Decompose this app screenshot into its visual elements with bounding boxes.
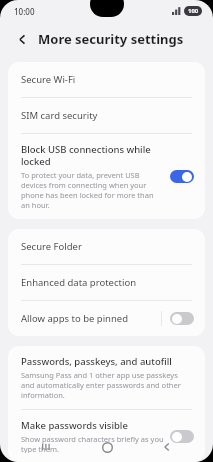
staticText: Secure Wi-Fi <box>21 73 76 86</box>
button[interactable]: Secure Wi-Fi <box>8 62 205 97</box>
staticText: Samsung Pass and 1 other app use passkey… <box>21 370 192 400</box>
button[interactable]: Passwords, passkeys, and autofill <box>8 346 205 409</box>
staticText: 10:00 <box>14 6 35 17</box>
button[interactable]: Off <box>170 430 194 443</box>
button[interactable]: Home <box>92 432 122 462</box>
button[interactable]: Recent apps <box>31 432 61 462</box>
staticText: Enhanced data protection <box>21 276 137 289</box>
staticText: To protect your data, prevent USB device… <box>21 170 164 210</box>
button[interactable]: Allow apps to be pinned <box>8 301 205 336</box>
staticText: SIM card security <box>21 109 98 122</box>
staticText: Secure Folder <box>21 240 82 253</box>
staticText: Show password characters briefly as you … <box>21 434 164 453</box>
button[interactable]: Back <box>12 29 32 49</box>
button[interactable]: Enhanced data protection <box>8 265 205 300</box>
staticText: Make passwords visible <box>21 419 128 432</box>
button[interactable]: Make passwords visible <box>8 410 205 462</box>
button[interactable]: Block USB connections while locked <box>8 134 205 219</box>
button[interactable]: Secure Folder <box>8 229 205 264</box>
staticText: Allow apps to be pinned <box>21 312 161 325</box>
staticText: Passwords, passkeys, and autofill <box>21 355 172 368</box>
button[interactable]: Off <box>170 312 194 325</box>
button[interactable]: Back <box>152 432 182 462</box>
staticText: Block USB connections while locked <box>21 143 164 168</box>
button[interactable]: SIM card security <box>8 98 205 133</box>
staticText: 100 <box>188 7 199 15</box>
staticText: More security settings <box>38 30 184 48</box>
button[interactable]: On <box>170 170 194 183</box>
